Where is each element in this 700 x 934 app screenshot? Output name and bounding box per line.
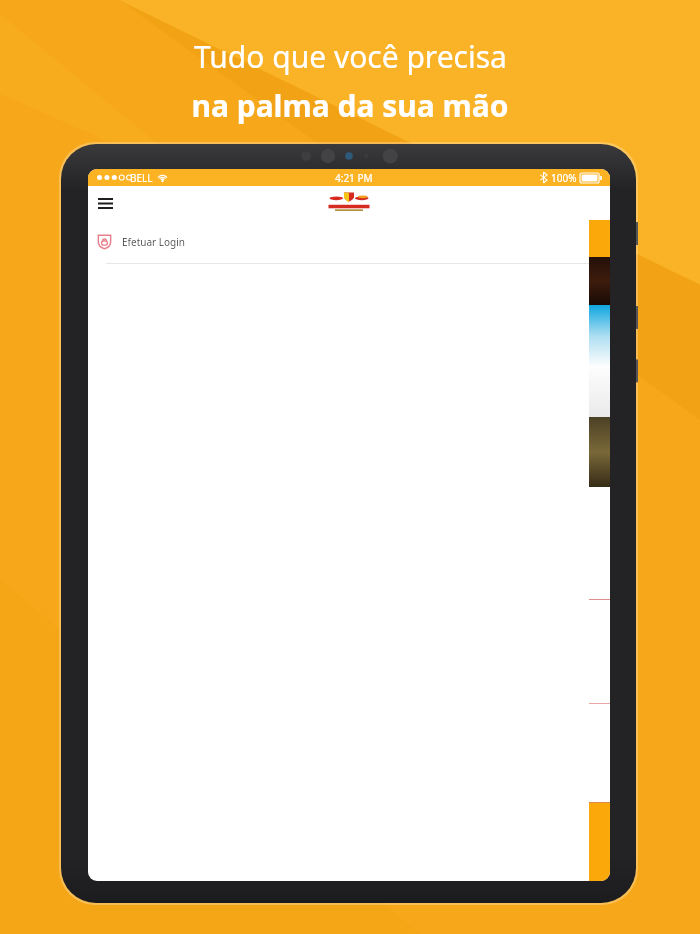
button[interactable]: Efetuar Login [88,220,610,263]
staticText: Efetuar Login [122,235,185,249]
staticText: 100% [551,171,577,185]
button[interactable]: Open menu [92,190,118,216]
staticText: BELL [130,171,153,185]
button[interactable]: Porto Fernandes [324,192,374,214]
staticText: na palma da sua mão [191,85,509,126]
staticText: Tudo que você precisa [194,36,507,77]
staticText: 4:21 PM [335,171,373,185]
